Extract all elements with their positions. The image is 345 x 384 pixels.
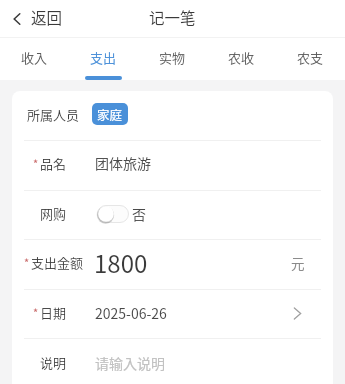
- staticText: 返回: [31, 6, 63, 28]
- button[interactable]: 支出: [69, 38, 138, 80]
- staticText: 支出: [90, 48, 117, 67]
- button[interactable]: 日期: [12, 290, 333, 339]
- staticText: 支出金额: [31, 253, 84, 272]
- staticText: 农支: [297, 48, 324, 67]
- button[interactable]: 返回: [0, 1, 73, 37]
- staticText: 所属人员: [27, 105, 80, 124]
- staticText: 1800: [94, 245, 148, 280]
- staticText: 网购: [40, 204, 67, 223]
- staticText: *: [24, 254, 30, 270]
- button[interactable]: 网购开关: [97, 205, 129, 223]
- staticText: 2025-06-26: [95, 303, 167, 323]
- staticText: 请输入说明: [95, 353, 165, 373]
- staticText: 家庭: [97, 105, 123, 123]
- staticText: 实物: [159, 48, 186, 67]
- staticText: 农收: [228, 48, 255, 67]
- staticText: 否: [132, 204, 146, 224]
- staticText: 品名: [40, 154, 67, 173]
- button[interactable]: 农支: [276, 38, 345, 80]
- button[interactable]: 农收: [207, 38, 276, 80]
- staticText: *: [33, 155, 39, 171]
- staticText: 说明: [40, 353, 67, 372]
- button[interactable]: 收入: [0, 38, 69, 80]
- staticText: 日期: [40, 303, 67, 322]
- button[interactable]: 实物: [138, 38, 207, 80]
- staticText: 元: [291, 253, 305, 273]
- staticText: 团体旅游: [95, 153, 151, 173]
- staticText: *: [33, 304, 39, 320]
- staticText: 记一笔: [149, 6, 196, 28]
- button[interactable]: 家庭: [92, 103, 128, 125]
- staticText: 收入: [21, 48, 48, 67]
